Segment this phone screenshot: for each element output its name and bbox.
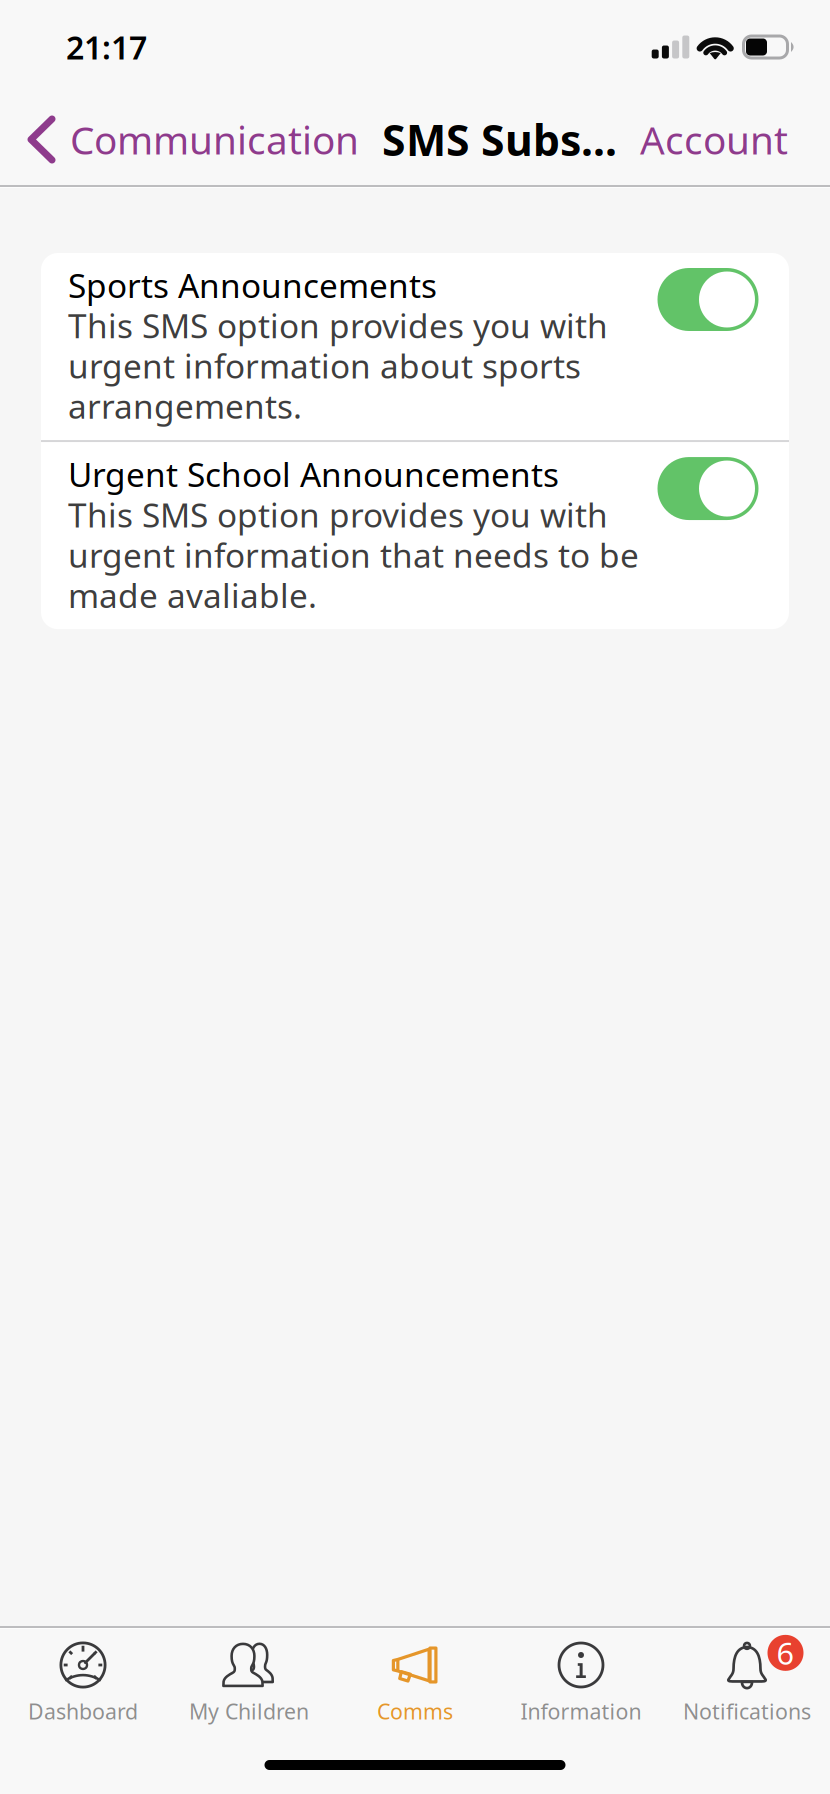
staticText: urgent information that needs to be (68, 533, 639, 577)
button[interactable]: Comms (332, 1629, 498, 1760)
staticText: arrangements. (68, 384, 302, 428)
staticText: urgent information about sports (68, 343, 581, 388)
staticText: Communication (70, 114, 359, 165)
staticText: Urgent School Announcements (68, 452, 559, 496)
button[interactable]: Dashboard (0, 1629, 166, 1760)
staticText: Notifications (683, 1697, 811, 1725)
button[interactable]: Information (498, 1629, 664, 1760)
staticText: This SMS option provides you with (68, 303, 608, 348)
staticText: Sports Announcements (68, 263, 437, 307)
button[interactable]: Account (630, 94, 830, 184)
staticText: Account (640, 114, 788, 165)
button[interactable]: 6 (664, 1629, 830, 1760)
staticText: Information (520, 1697, 641, 1725)
staticText: This SMS option provides you with (68, 492, 608, 537)
button[interactable]: Toggle Urgent School Announcements (649, 452, 762, 520)
staticText: Dashboard (28, 1697, 138, 1725)
staticText: 21:17 (66, 26, 147, 68)
staticText: made avaliable. (68, 573, 317, 617)
button[interactable]: Toggle Sports Announcements (649, 263, 762, 331)
button[interactable]: My Children (166, 1629, 332, 1760)
staticText: Comms (377, 1697, 453, 1725)
staticText: 6 (776, 1632, 794, 1673)
staticText: My Children (189, 1697, 309, 1725)
staticText: SMS Subs... (382, 111, 617, 168)
button[interactable]: Communication (0, 94, 369, 184)
